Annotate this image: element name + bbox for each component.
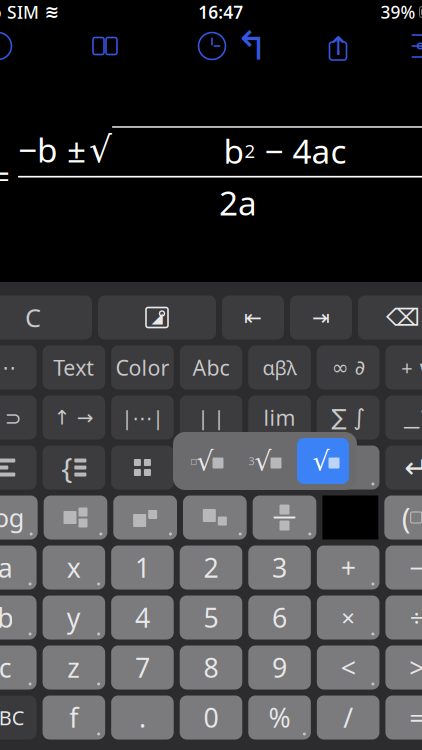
button[interactable]: Superscript [113, 495, 177, 539]
staticText: Text [53, 353, 94, 382]
button[interactable]: . [111, 695, 174, 739]
button[interactable]: − [385, 545, 422, 589]
button[interactable]: Parentheses [384, 495, 422, 539]
staticText: ÷ [410, 602, 422, 633]
staticText: ∞ ∂ [332, 356, 365, 379]
button[interactable]: | | [180, 395, 242, 439]
button[interactable]: 9 [248, 645, 311, 689]
button[interactable]: ⇥ [290, 295, 352, 339]
staticText: 7 [135, 650, 150, 685]
button[interactable]: Underline [385, 395, 422, 439]
button[interactable]: ⋯ [0, 345, 37, 389]
button[interactable]: Abc [180, 345, 242, 389]
button[interactable]: Square root options [317, 445, 379, 489]
button[interactable]: y [43, 595, 105, 639]
button[interactable]: Color [111, 345, 174, 389]
button[interactable]: × [317, 595, 379, 639]
button[interactable]: Text [43, 345, 105, 389]
button[interactable]: ∞ ∂ [317, 345, 379, 389]
staticText: f [69, 700, 78, 735]
button[interactable]: a [0, 545, 37, 589]
staticText: % [269, 700, 291, 735]
button[interactable]: Delete [358, 295, 422, 339]
button[interactable]: z [43, 645, 105, 689]
button[interactable]: History [196, 30, 228, 62]
staticText: c [0, 650, 12, 685]
button[interactable]: |⋯| [111, 395, 174, 439]
staticText: b [223, 129, 244, 173]
button[interactable]: Cases [43, 445, 105, 489]
button[interactable]: ABC [0, 695, 37, 739]
button[interactable]: + ∨ [385, 345, 422, 389]
staticText: < ⊃ [0, 404, 22, 431]
button[interactable]: x [43, 545, 105, 589]
staticText: ↑ [327, 32, 348, 60]
staticText: 5 [203, 600, 218, 635]
button[interactable]: Insert image [98, 295, 216, 339]
button[interactable]: Stack [0, 445, 37, 489]
button[interactable]: b [0, 595, 37, 639]
button[interactable]: 1 [111, 545, 174, 589]
button[interactable]: Subscript [183, 495, 247, 539]
staticText: ▫ [190, 455, 197, 467]
button[interactable]: 3 [248, 545, 311, 589]
staticText: 16:47 [198, 0, 243, 23]
staticText: √ [196, 446, 213, 476]
button[interactable]: Library [89, 30, 121, 62]
button[interactable]: Square root [297, 438, 349, 484]
staticText: |⋯| [121, 404, 163, 431]
staticText: a [0, 550, 13, 585]
button[interactable]: 6 [248, 595, 311, 639]
button[interactable]: f [43, 695, 105, 739]
staticText: 4 [135, 600, 150, 635]
staticText: 39% [380, 0, 415, 23]
button[interactable]: Settings [408, 30, 422, 62]
button[interactable]: ⇤ [222, 295, 284, 339]
button[interactable]: < [317, 645, 379, 689]
button[interactable]: nth root [181, 439, 233, 483]
button[interactable]: Info [0, 30, 14, 62]
button[interactable]: log [0, 495, 38, 539]
button[interactable]: 7 [111, 645, 174, 689]
button[interactable]: 5 [180, 595, 242, 639]
button[interactable]: c [0, 645, 37, 689]
button[interactable]: 2 [180, 545, 242, 589]
button[interactable]: Share [322, 30, 354, 62]
button[interactable]: Root [180, 445, 242, 489]
staticText: x [67, 550, 81, 585]
button[interactable]: = [385, 695, 422, 739]
button[interactable]: Fraction [253, 495, 316, 539]
button[interactable]: 8 [180, 645, 242, 689]
button[interactable]: αβλ [248, 345, 311, 389]
button[interactable]: 4 [111, 595, 174, 639]
staticText: − 4ac [255, 129, 346, 173]
staticText: αβλ [263, 354, 297, 381]
button[interactable]: % [248, 695, 311, 739]
button[interactable]: 0 [180, 695, 242, 739]
button[interactable]: C [0, 295, 92, 339]
staticText: No SIM [0, 0, 39, 23]
button[interactable] [248, 445, 311, 489]
button[interactable]: / [317, 695, 379, 739]
button[interactable]: ∑ ∫ [317, 395, 379, 439]
button[interactable]: Superscript and subscript [44, 495, 107, 539]
button[interactable]: Undo [236, 30, 268, 62]
staticText: 2 [203, 550, 218, 585]
button[interactable]: Return [385, 445, 422, 489]
button[interactable]: > [385, 645, 422, 689]
button[interactable]: Matrix [111, 445, 174, 489]
staticText: log [0, 501, 25, 534]
staticText: > [409, 650, 422, 685]
staticText: / [343, 700, 353, 735]
staticText: . [139, 700, 146, 735]
staticText: ( [402, 498, 411, 537]
button[interactable]: ↑ → [43, 395, 105, 439]
button[interactable]: < ⊃ [0, 395, 37, 439]
button[interactable]: lim [248, 395, 311, 439]
button[interactable]: ÷ [385, 595, 422, 639]
staticText: 3 [248, 454, 254, 468]
button[interactable]: Cube root [239, 439, 291, 483]
button[interactable]: + [317, 545, 379, 589]
staticText: ↰ [235, 23, 269, 69]
